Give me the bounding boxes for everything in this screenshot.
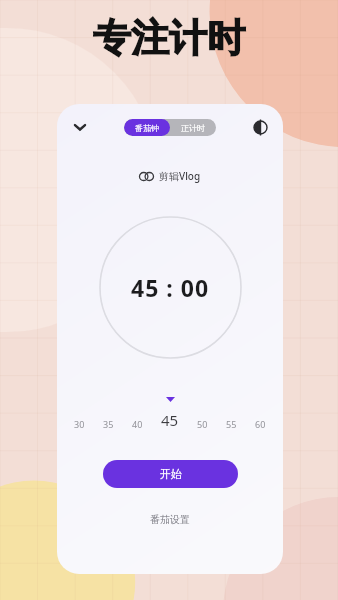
- staticText: 50: [197, 418, 208, 430]
- button[interactable]: 45: [158, 408, 182, 432]
- button[interactable]: 开始: [103, 460, 238, 488]
- button[interactable]: 35: [100, 416, 117, 432]
- button[interactable]: 55: [223, 416, 240, 432]
- staticText: 45 : 00: [131, 272, 210, 303]
- button[interactable]: 30: [71, 416, 88, 432]
- staticText: 开始: [160, 467, 182, 481]
- button[interactable]: Collapse: [67, 114, 93, 140]
- button[interactable]: 40: [129, 416, 146, 432]
- staticText: 35: [103, 418, 114, 430]
- staticText: 45: [161, 410, 179, 430]
- button[interactable]: 正计时: [170, 119, 216, 136]
- staticText: 40: [132, 418, 143, 430]
- button[interactable]: 番茄设置: [142, 510, 198, 529]
- button[interactable]: 60: [252, 416, 269, 432]
- staticText: 专注计时: [93, 14, 245, 62]
- staticText: 剪辑Vlog: [159, 169, 201, 183]
- button[interactable]: Theme: [247, 114, 273, 140]
- staticText: 番茄设置: [150, 513, 190, 526]
- button[interactable]: 剪辑Vlog: [133, 166, 207, 186]
- staticText: 60: [255, 418, 266, 430]
- button[interactable]: 番茄钟: [124, 119, 170, 136]
- staticText: 30: [74, 418, 85, 430]
- staticText: 正计时: [181, 123, 205, 133]
- staticText: 番茄钟: [135, 123, 159, 133]
- button[interactable]: 50: [194, 416, 211, 432]
- staticText: 55: [226, 418, 237, 430]
